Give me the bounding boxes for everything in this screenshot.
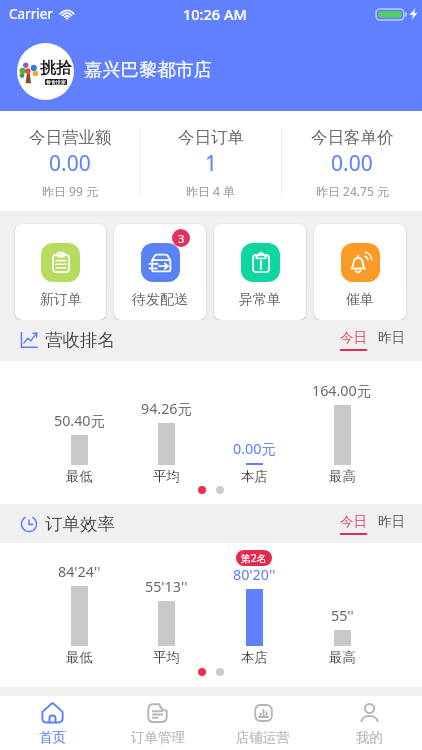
button[interactable]: 最高: [298, 361, 386, 504]
staticText: 0.00: [331, 149, 373, 178]
button[interactable]: 昨日: [378, 515, 405, 532]
staticText: 营收排名: [45, 329, 115, 351]
button[interactable]: 新订单: [15, 224, 106, 320]
staticText: 第2名: [241, 551, 267, 565]
button[interactable]: 催单: [314, 224, 406, 320]
staticText: 催单: [346, 291, 374, 309]
button[interactable]: 今日: [340, 513, 367, 535]
staticText: 55'': [331, 606, 354, 625]
button[interactable]: 本店: [210, 543, 298, 687]
staticText: 50.40元: [54, 411, 105, 431]
staticText: 我的: [356, 729, 383, 746]
staticText: 平均: [153, 649, 180, 666]
button[interactable]: 今日营业额: [0, 111, 140, 211]
staticText: 0.00: [49, 149, 91, 178]
staticText: 挑拾: [40, 58, 72, 78]
button[interactable]: Store logo: [17, 43, 74, 100]
staticText: 今日营业额: [29, 127, 112, 148]
staticText: 10:26 AM: [183, 4, 247, 24]
staticText: 最高: [329, 649, 356, 666]
button[interactable]: 平均: [123, 543, 210, 687]
staticText: 今日订单: [178, 127, 244, 148]
staticText: 164.00元: [312, 381, 372, 401]
staticText: 店铺运营: [236, 729, 290, 746]
staticText: 嘉兴巴黎都市店: [84, 58, 213, 81]
button[interactable]: 平均: [123, 361, 210, 504]
staticText: 最低: [66, 649, 93, 666]
button[interactable]: 待发配送: [114, 224, 206, 320]
staticText: 今日: [340, 329, 367, 346]
button[interactable]: 今日: [340, 329, 367, 351]
staticText: 订单效率: [45, 513, 115, 535]
staticText: 订单管理: [131, 729, 185, 746]
staticText: 今日: [340, 513, 367, 530]
staticText: 新订单: [40, 291, 82, 309]
staticText: 昨日: [378, 513, 405, 530]
staticText: 餐食世家: [46, 79, 66, 85]
staticText: 84'24'': [58, 562, 101, 581]
button[interactable]: 订单管理: [105, 696, 210, 750]
button[interactable]: 最低: [36, 543, 123, 687]
staticText: 昨日 24.75 元: [316, 183, 389, 199]
staticText: 55'13'': [145, 577, 188, 596]
button[interactable]: 昨日: [378, 331, 405, 348]
staticText: 昨日: [378, 329, 405, 346]
staticText: Carrier: [9, 5, 53, 23]
staticText: 0.00元: [233, 439, 276, 459]
staticText: 首页: [39, 729, 66, 746]
button[interactable]: 我的: [316, 696, 422, 750]
staticText: 平均: [153, 468, 180, 485]
button[interactable]: 异常单: [214, 224, 306, 320]
staticText: 1: [205, 149, 218, 178]
button[interactable]: 本店: [210, 361, 298, 504]
button[interactable]: 首页: [0, 696, 105, 750]
staticText: 昨日 99 元: [42, 183, 98, 199]
staticText: 3: [178, 231, 185, 246]
button[interactable]: 今日客单价: [282, 111, 422, 211]
staticText: 今日客单价: [311, 127, 394, 148]
staticText: 本店: [241, 468, 268, 485]
button[interactable]: 店铺运营: [210, 696, 316, 750]
staticText: 80'20'': [233, 565, 276, 584]
staticText: 最低: [66, 468, 93, 485]
staticText: 本店: [241, 649, 268, 666]
staticText: 最高: [329, 468, 356, 485]
staticText: 昨日 4 单: [186, 183, 236, 199]
staticText: 待发配送: [132, 291, 188, 309]
button[interactable]: 今日订单: [141, 111, 281, 211]
button[interactable]: 最高: [298, 543, 386, 687]
button[interactable]: 最低: [36, 361, 123, 504]
staticText: 94.26元: [141, 399, 192, 419]
staticText: 异常单: [239, 291, 281, 309]
